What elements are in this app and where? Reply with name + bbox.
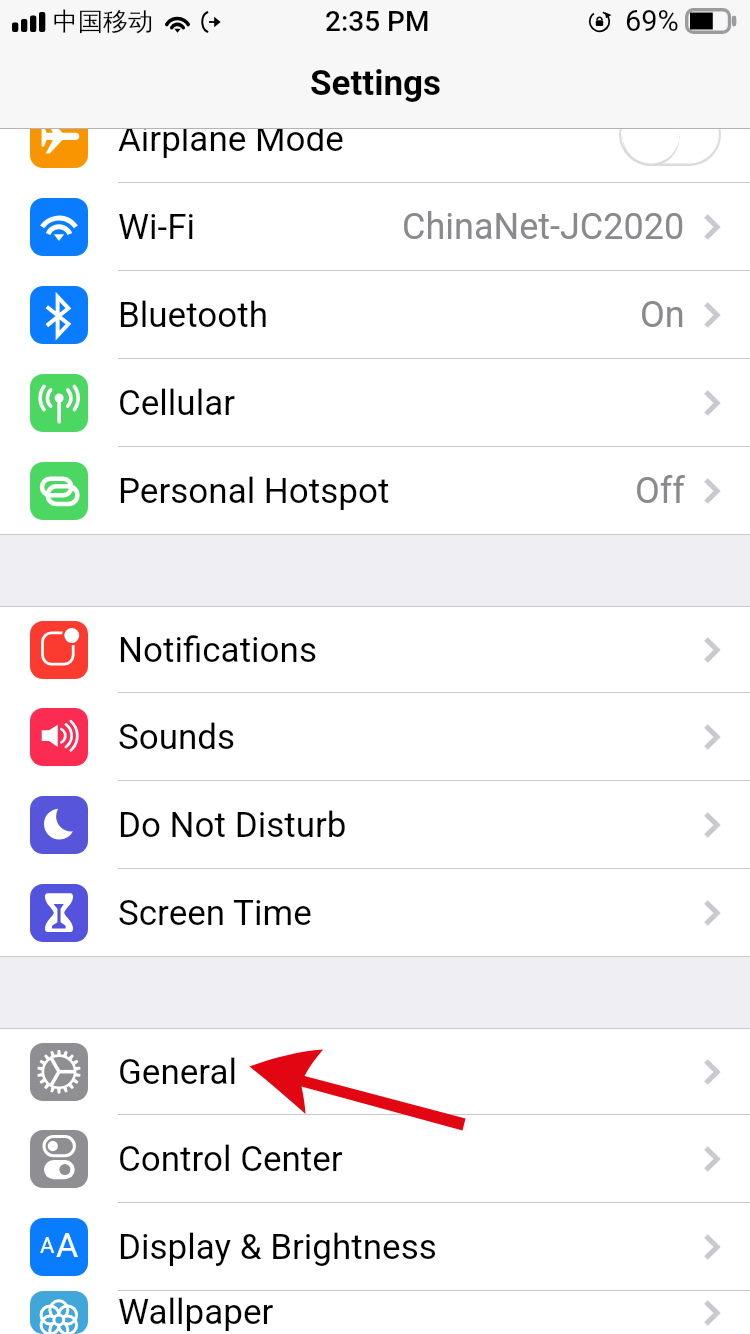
button[interactable]: Cellular — [0, 359, 750, 447]
staticText: Settings — [310, 63, 441, 104]
button[interactable]: Notifications — [0, 607, 750, 693]
button[interactable]: A — [0, 1203, 750, 1291]
staticText: Personal Hotspot — [118, 471, 390, 512]
button[interactable]: Sounds — [0, 693, 750, 781]
staticText: Do Not Disturb — [118, 805, 347, 846]
staticText: Notifications — [118, 630, 317, 671]
staticText: Display & Brightness — [118, 1227, 437, 1268]
button[interactable]: Do Not Disturb — [0, 781, 750, 869]
staticText: Off — [635, 470, 685, 512]
button[interactable]: General — [0, 1029, 750, 1115]
staticText: Wallpaper — [118, 1292, 274, 1333]
button[interactable]: Wallpaper — [0, 1291, 750, 1334]
staticText: Bluetooth — [118, 295, 268, 336]
staticText: A — [56, 1225, 79, 1265]
button[interactable]: Wi-Fi — [0, 183, 750, 271]
staticText: ChinaNet-JC2020 — [402, 206, 685, 248]
button[interactable]: Personal Hotspot — [0, 447, 750, 535]
staticText: Wi-Fi — [118, 207, 196, 248]
staticText: Screen Time — [118, 893, 312, 934]
staticText: 中国移动 — [53, 6, 153, 37]
staticText: General — [118, 1052, 238, 1093]
staticText: On — [640, 294, 685, 336]
staticText: Sounds — [118, 717, 236, 758]
staticText: Airplane Mode — [118, 119, 344, 160]
button[interactable]: Control Center — [0, 1115, 750, 1203]
staticText: A — [40, 1233, 55, 1259]
staticText: 2:35 PM — [325, 5, 430, 38]
button[interactable]: Bluetooth — [0, 271, 750, 359]
button[interactable]: Screen Time — [0, 869, 750, 957]
button[interactable]: Airplane Mode — [0, 95, 750, 183]
staticText: Control Center — [118, 1139, 343, 1180]
staticText: 69% — [625, 4, 679, 38]
staticText: Cellular — [118, 383, 236, 424]
